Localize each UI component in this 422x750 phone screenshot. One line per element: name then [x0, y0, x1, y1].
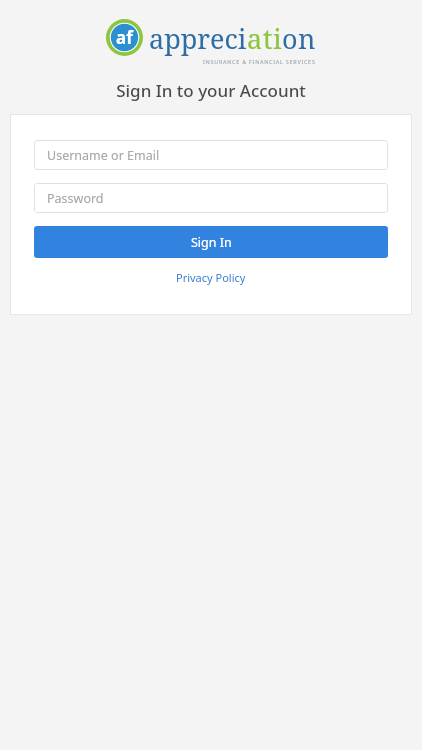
staticText: af — [116, 26, 133, 49]
staticText: i — [273, 20, 282, 57]
button[interactable]: Username or Email — [34, 140, 388, 170]
staticText: Username or Email — [47, 147, 160, 164]
staticText: INSURANCE & FINANCIAL SERVICES — [203, 58, 316, 65]
staticText: a — [247, 20, 263, 57]
button[interactable]: Privacy Policy — [168, 266, 254, 289]
staticText: Password — [47, 190, 104, 207]
staticText: n — [298, 20, 316, 57]
staticText: Privacy Policy — [176, 270, 246, 285]
staticText: appreci — [149, 20, 247, 57]
staticText: Sign In — [191, 234, 232, 251]
button[interactable]: Sign In — [34, 226, 388, 258]
staticText: Sign In to your Account — [116, 79, 306, 102]
staticText: o — [282, 20, 298, 57]
button[interactable]: Password — [34, 183, 388, 213]
staticText: t — [263, 20, 273, 57]
